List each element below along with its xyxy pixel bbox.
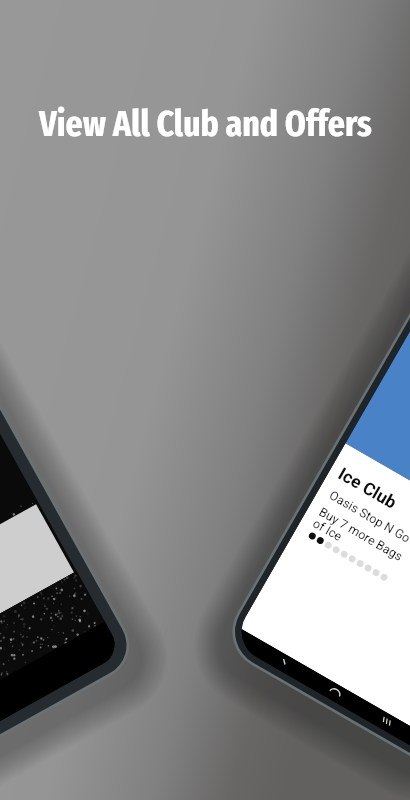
staticText: View All Club and Offers bbox=[39, 102, 372, 146]
